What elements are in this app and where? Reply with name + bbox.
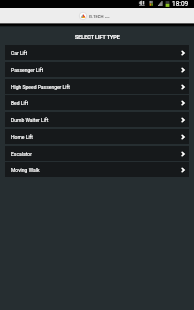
button[interactable]: Home Lift: [5, 129, 189, 144]
staticText: SELECT LIFT TYPE: [75, 34, 120, 40]
other: Open: [179, 49, 187, 57]
other: Open: [179, 99, 187, 107]
button[interactable]: Passenger Lift: [5, 62, 189, 77]
staticText: Passenger Lift: [11, 67, 179, 73]
other: Open: [179, 66, 187, 74]
staticText: G.TECH: [89, 14, 104, 19]
button[interactable]: Bed Lift: [5, 95, 189, 110]
staticText: Home Lift: [11, 134, 179, 140]
button[interactable]: High Speed Passenger Lift: [5, 79, 189, 94]
other: Open: [179, 150, 187, 158]
other: Open: [179, 166, 187, 174]
staticText: Car Lift: [11, 50, 179, 56]
other: Open: [179, 83, 187, 91]
staticText: BETA: [105, 16, 110, 18]
button[interactable]: Moving Walk: [5, 162, 189, 177]
button[interactable]: Car Lift: [5, 45, 189, 60]
button[interactable]: Escalator: [5, 146, 189, 161]
other: Open: [179, 116, 187, 124]
staticText: Moving Walk: [11, 167, 179, 173]
button[interactable]: Dumb Waiter Lift: [5, 112, 189, 127]
other: Open: [179, 133, 187, 141]
staticText: Bed Lift: [11, 100, 179, 106]
staticText: Dumb Waiter Lift: [11, 117, 179, 123]
staticText: High Speed Passenger Lift: [11, 84, 179, 90]
staticText: Escalator: [11, 151, 179, 157]
staticText: 18:09: [172, 0, 189, 8]
